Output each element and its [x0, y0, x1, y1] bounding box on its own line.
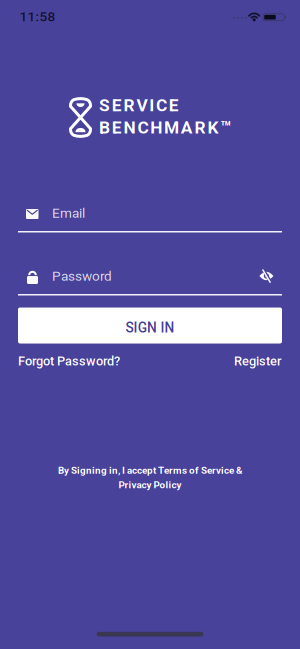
staticText: Password — [52, 268, 112, 284]
button[interactable]: Password — [0, 266, 300, 295]
staticText: Forgot Password? — [18, 353, 120, 368]
staticText: BENCHMARK™ — [99, 117, 231, 138]
staticText: By Signing in, I accept Terms of Service… — [58, 464, 242, 476]
staticText: SIGN IN — [125, 320, 175, 336]
staticText: Email — [52, 205, 85, 221]
button[interactable]: Forgot Password? — [18, 353, 120, 368]
staticText: Register — [234, 353, 282, 368]
button[interactable]: By Signing in, I accept Terms of Service… — [58, 464, 242, 491]
staticText: 11:58 — [19, 8, 55, 24]
button[interactable]: Show password — [259, 267, 274, 285]
staticText: Privacy Policy — [118, 479, 181, 491]
button[interactable]: SIGN IN — [0, 307, 300, 343]
staticText: SERVICE — [99, 95, 179, 115]
button[interactable]: Register — [234, 353, 282, 368]
button[interactable]: Email — [0, 203, 300, 232]
